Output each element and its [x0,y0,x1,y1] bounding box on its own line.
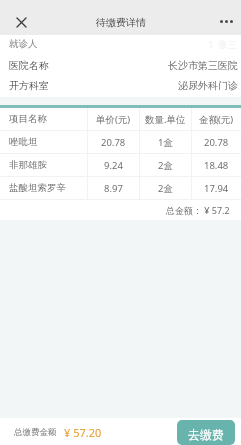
staticText: 金额(元) [199,113,234,126]
staticText: 9.24 [104,159,123,172]
staticText: 17.94 [204,182,229,195]
staticText: 20.78 [101,136,126,149]
staticText: 总金额： ¥ 57.2 [166,204,230,216]
staticText: 8.97 [104,182,123,195]
staticText: 医院名称 [9,59,49,72]
staticText: 2盒 [158,182,173,195]
staticText: 2盒 [158,159,173,172]
staticText: 20.78 [204,136,229,149]
staticText: 泌尿外科门诊 [178,79,238,92]
staticText: 非那雄胺 [9,159,47,171]
staticText: 开方科室 [9,79,49,92]
staticText: ¥ 57.20 [64,425,102,440]
staticText: 项目名称 [9,113,47,125]
button[interactable]: 去缴费 [177,420,235,445]
staticText: 就诊人 [9,38,38,50]
staticText: 长沙市第三医院 [168,59,238,72]
staticText: 单价(元) [96,113,131,126]
staticText: 唑吡坦 [9,136,38,148]
staticText: 去缴费 [188,427,224,442]
staticText: 盐酸坦索罗辛 [9,182,66,194]
staticText: 18.48 [204,159,229,172]
staticText: 1盒 [158,136,173,149]
button[interactable]: More options [219,16,233,26]
button[interactable]: Close [15,16,27,28]
staticText: 数量.单位 [145,113,186,126]
staticText: 总缴费金额 [14,427,57,438]
staticText: 1 张三 [208,38,238,51]
staticText: 待缴费详情 [96,16,146,29]
